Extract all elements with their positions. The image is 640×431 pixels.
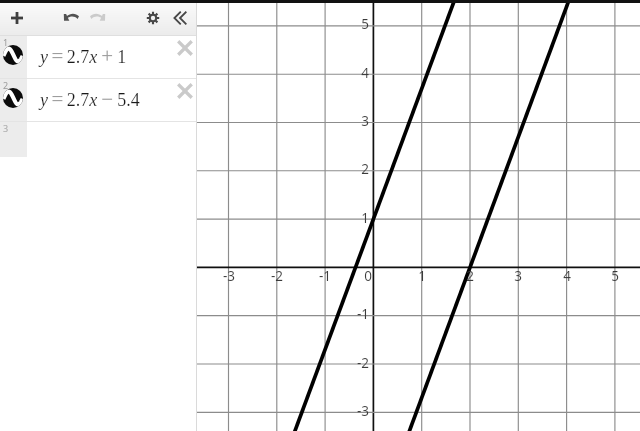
staticText: 3: [337, 112, 369, 130]
staticText: 2: [337, 160, 369, 178]
staticText: 3: [3, 122, 9, 134]
staticText: 5: [599, 267, 631, 285]
staticText: 4: [551, 267, 583, 285]
staticText: y = 2.7x + 1: [40, 44, 127, 67]
staticText: -3: [213, 267, 245, 285]
staticText: -1: [309, 267, 341, 285]
button[interactable]: Undo: [58, 4, 84, 30]
staticText: 4: [337, 64, 369, 82]
button[interactable]: 1: [0, 36, 197, 78]
staticText: 0: [340, 267, 372, 285]
button[interactable]: 3: [0, 122, 197, 157]
button[interactable]: 2: [0, 79, 197, 121]
button[interactable]: Delete expression: [174, 80, 196, 102]
staticText: -2: [261, 267, 293, 285]
staticText: 1: [3, 36, 9, 48]
staticText: 1: [406, 267, 438, 285]
staticText: 5: [337, 15, 369, 33]
button[interactable]: Redo: [85, 4, 111, 30]
button[interactable]: Collapse panel: [167, 5, 193, 31]
staticText: -2: [337, 354, 369, 372]
button[interactable]: Delete expression: [174, 37, 196, 59]
staticText: 1: [337, 209, 369, 227]
staticText: 2: [3, 79, 9, 91]
staticText: 2: [454, 267, 486, 285]
staticText: -3: [337, 402, 369, 420]
button[interactable]: Add expression: [4, 5, 30, 31]
staticText: y = 2.7x − 5.4: [40, 87, 140, 110]
staticText: -1: [337, 305, 369, 323]
button[interactable]: Settings: [140, 5, 166, 31]
staticText: 3: [502, 267, 534, 285]
